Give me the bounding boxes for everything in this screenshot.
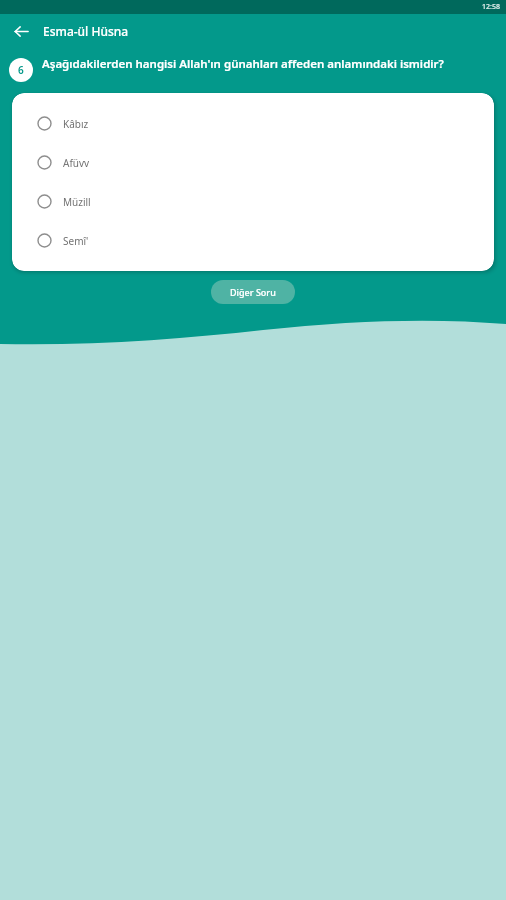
staticText: 12:58 bbox=[482, 2, 500, 12]
button[interactable]: Semî' bbox=[12, 221, 494, 260]
staticText: Kâbız bbox=[63, 117, 89, 131]
staticText: Aşağıdakilerden hangisi Allah'ın günahla… bbox=[42, 56, 444, 72]
staticText: 6 bbox=[18, 63, 24, 77]
button[interactable]: Back bbox=[8, 18, 34, 44]
staticText: Diğer Soru bbox=[230, 286, 276, 298]
button[interactable]: Kâbız bbox=[12, 104, 494, 143]
staticText: Semî' bbox=[63, 234, 89, 248]
button[interactable]: Diğer Soru bbox=[211, 280, 295, 304]
button[interactable]: Müzill bbox=[12, 182, 494, 221]
button[interactable]: Afüvv bbox=[12, 143, 494, 182]
staticText: Esma-ül Hüsna bbox=[43, 23, 129, 39]
staticText: Afüvv bbox=[63, 156, 90, 170]
staticText: Müzill bbox=[63, 195, 91, 209]
